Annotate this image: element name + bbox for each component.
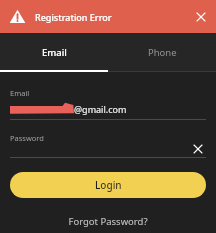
button[interactable]: Email bbox=[0, 33, 108, 72]
button[interactable]: Login bbox=[10, 172, 206, 198]
staticText: Phone bbox=[148, 46, 177, 59]
staticText: Email bbox=[10, 88, 30, 98]
button[interactable]: Forgot Password? bbox=[58, 212, 158, 231]
button[interactable]: Phone bbox=[108, 33, 216, 72]
staticText: Login bbox=[95, 178, 122, 192]
staticText: Registration Error bbox=[35, 11, 112, 23]
staticText: Password bbox=[10, 133, 44, 143]
staticText: @gmail.com bbox=[74, 103, 127, 115]
button[interactable]: Clear password bbox=[190, 141, 206, 157]
staticText: Forgot Password? bbox=[68, 215, 148, 228]
button[interactable]: Close bbox=[190, 6, 212, 28]
staticText: Email bbox=[42, 46, 67, 59]
